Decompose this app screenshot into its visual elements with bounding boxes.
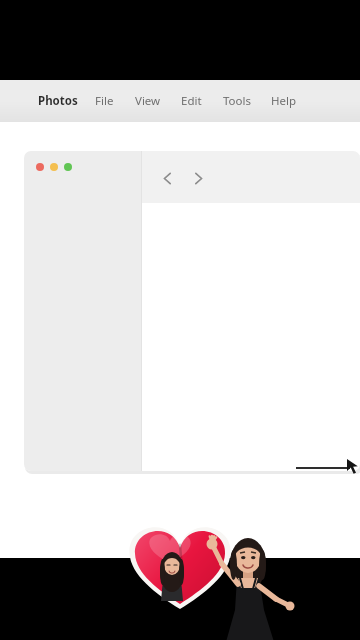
button[interactable]: Back	[153, 164, 181, 192]
button[interactable]: Photos	[36, 88, 80, 114]
staticText: Edit	[181, 93, 202, 109]
staticText: View	[135, 93, 161, 109]
button[interactable]: Tools	[221, 88, 253, 114]
button[interactable]: Heart sticker with avatars	[128, 510, 293, 640]
staticText: Photos	[38, 93, 78, 109]
staticText: File	[95, 93, 114, 109]
button[interactable]: Window controls	[36, 163, 72, 171]
button[interactable]: Help	[269, 88, 299, 114]
button[interactable]: Forward	[184, 164, 212, 192]
staticText: Tools	[223, 93, 251, 109]
button[interactable]: File	[93, 88, 116, 114]
button[interactable]: Edit	[179, 88, 204, 114]
staticText: Help	[271, 93, 297, 109]
button[interactable]: View	[133, 88, 163, 114]
other: Pointer	[347, 459, 360, 474]
